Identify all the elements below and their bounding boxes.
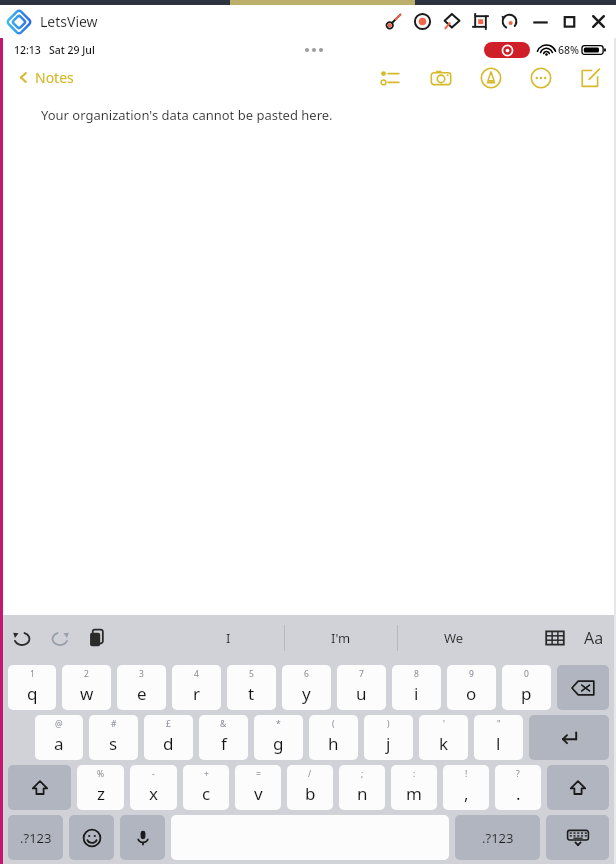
staticText: m	[406, 782, 422, 805]
staticText: 6	[304, 668, 309, 680]
staticText: LetsView	[40, 12, 98, 31]
staticText: e	[137, 682, 147, 705]
staticText: x	[149, 782, 158, 805]
button[interactable]: I	[172, 615, 284, 660]
staticText: *	[276, 718, 281, 730]
button[interactable]: /	[287, 765, 333, 810]
staticText: "	[497, 718, 501, 730]
staticText: 1	[30, 668, 35, 680]
staticText: .?123	[20, 829, 52, 847]
button[interactable]: '	[419, 715, 468, 760]
staticText: t	[248, 682, 255, 705]
staticText: ?	[516, 768, 520, 780]
button[interactable]: +	[183, 765, 229, 810]
button[interactable]: New Note	[580, 67, 602, 89]
staticText: f	[221, 732, 227, 755]
staticText: )	[387, 718, 390, 730]
button[interactable]: 4	[172, 665, 221, 710]
button[interactable]: 5	[227, 665, 276, 710]
button[interactable]: *	[254, 715, 303, 760]
button[interactable]: More	[530, 67, 552, 89]
button[interactable]: Close	[589, 12, 608, 31]
staticText: 0	[524, 668, 529, 680]
staticText: 5	[249, 668, 254, 680]
button[interactable]: We	[398, 615, 510, 660]
staticText: &	[220, 718, 227, 730]
staticText: 8	[414, 668, 419, 680]
button[interactable]: 3	[117, 665, 166, 710]
button[interactable]: Draw	[384, 12, 403, 31]
staticText: !	[465, 768, 468, 780]
button[interactable]: @	[35, 715, 83, 760]
button[interactable]: Aa	[582, 625, 606, 651]
button[interactable]: :	[391, 765, 437, 810]
button[interactable]: &	[199, 715, 248, 760]
button[interactable]: Record	[413, 12, 432, 31]
button[interactable]: %	[77, 765, 124, 810]
button[interactable]: Numbers	[8, 815, 63, 860]
button[interactable]: Markup	[480, 67, 502, 89]
button[interactable]: Camera	[430, 67, 452, 89]
button[interactable]: 6	[282, 665, 331, 710]
button[interactable]: Notes	[15, 65, 76, 90]
button[interactable]: 8	[392, 665, 441, 710]
staticText: 3	[139, 668, 144, 680]
staticText: =	[256, 768, 261, 780]
button[interactable]: £	[144, 715, 193, 760]
staticText: -	[152, 768, 155, 780]
button[interactable]: Dictation	[120, 815, 165, 860]
staticText: We	[444, 629, 464, 647]
staticText: v	[254, 782, 263, 805]
staticText: q	[27, 682, 38, 705]
button[interactable]: 9	[447, 665, 496, 710]
button[interactable]: Emoji	[69, 815, 114, 860]
staticText: a	[54, 732, 64, 755]
staticText: w	[80, 682, 94, 705]
button[interactable]: Paste	[87, 627, 109, 649]
staticText: y	[302, 682, 311, 705]
button[interactable]: =	[235, 765, 281, 810]
button[interactable]: (	[309, 715, 358, 760]
staticText: l	[496, 732, 501, 755]
button[interactable]: Backspace	[557, 665, 609, 710]
button[interactable]: Numbers right	[455, 815, 540, 860]
button[interactable]: 7	[337, 665, 386, 710]
staticText: 2	[84, 668, 89, 680]
button[interactable]: ?	[495, 765, 541, 810]
button[interactable]: -	[130, 765, 177, 810]
button[interactable]: Undo	[11, 627, 33, 649]
button[interactable]: Return	[529, 715, 609, 760]
button[interactable]: ;	[339, 765, 385, 810]
button[interactable]: Shift	[8, 765, 71, 810]
staticText: d	[163, 732, 174, 755]
button[interactable]: 2	[62, 665, 111, 710]
staticText: 9	[469, 668, 474, 680]
button[interactable]: !	[443, 765, 489, 810]
staticText: Sat 29 Jul	[49, 43, 95, 57]
button[interactable]: )	[364, 715, 413, 760]
button[interactable]: I'm	[285, 615, 397, 660]
button[interactable]: Checklist	[380, 67, 402, 89]
staticText: .	[516, 782, 521, 805]
button[interactable]: Pin	[442, 12, 461, 31]
button[interactable]: "	[474, 715, 523, 760]
button[interactable]: 1	[8, 665, 56, 710]
button[interactable]	[484, 42, 530, 58]
staticText: @	[55, 718, 63, 730]
staticText: b	[305, 782, 316, 805]
button[interactable]: Shift right	[547, 765, 609, 810]
staticText: z	[97, 782, 105, 805]
staticText: r	[193, 682, 201, 705]
button[interactable]: Minimize	[531, 12, 550, 31]
staticText: 4	[194, 668, 199, 680]
button[interactable]: Crop	[471, 12, 490, 31]
button[interactable]: Table	[544, 627, 566, 649]
button[interactable]: Redo	[49, 627, 71, 649]
button[interactable]: 0	[502, 665, 551, 710]
staticText: o	[466, 682, 477, 705]
button[interactable]: Maximize	[560, 12, 579, 31]
button[interactable]: Hide keyboard	[546, 815, 609, 860]
button[interactable]: #	[89, 715, 138, 760]
button[interactable]: Rotate	[500, 12, 519, 31]
